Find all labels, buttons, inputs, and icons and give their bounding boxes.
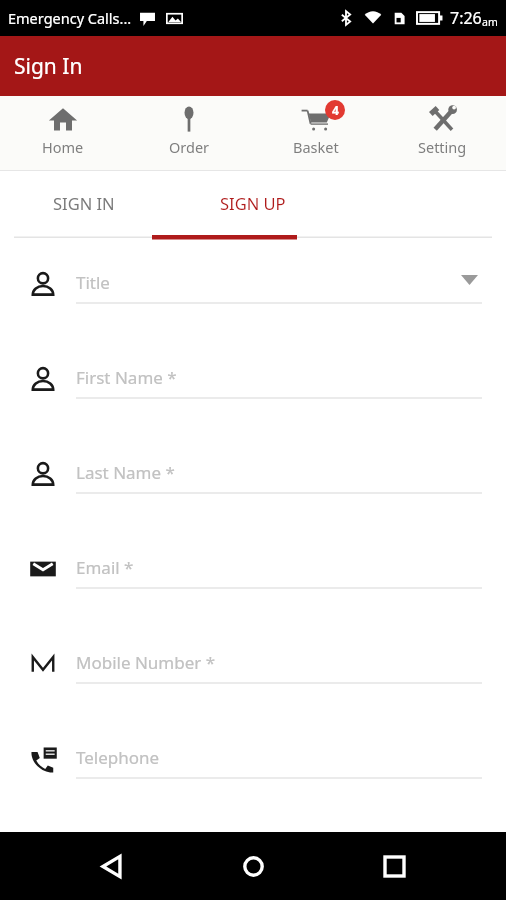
button[interactable]: Back	[85, 838, 141, 894]
button[interactable]: 4	[252, 96, 379, 170]
button[interactable]: Recent apps	[366, 838, 422, 894]
button[interactable]: Last Name *	[0, 452, 506, 547]
staticText: Email *	[76, 556, 134, 579]
staticText: Telephone	[76, 746, 160, 769]
button[interactable]: SIGN IN	[0, 171, 168, 235]
staticText: 4	[332, 102, 339, 118]
staticText: Sign In	[14, 52, 83, 81]
staticText: Home	[42, 137, 84, 157]
button[interactable]: Order	[126, 96, 252, 170]
staticText: Order	[169, 137, 210, 157]
staticText: 7:26	[450, 7, 482, 29]
button[interactable]: Telephone	[0, 737, 506, 832]
button[interactable]: Title	[0, 262, 506, 357]
staticText: Emergency Calls...	[8, 8, 132, 28]
staticText: SIGN IN	[53, 192, 115, 214]
button[interactable]: Email *	[0, 547, 506, 642]
staticText: Mobile Number *	[76, 651, 216, 674]
button[interactable]: Setting	[379, 96, 506, 170]
staticText: First Name *	[76, 366, 177, 389]
button[interactable]: First Name *	[0, 357, 506, 452]
button[interactable]: Mobile Number *	[0, 642, 506, 737]
staticText: Basket	[293, 137, 339, 157]
staticText: Title	[76, 271, 110, 294]
button[interactable]: Home	[225, 838, 281, 894]
staticText: Last Name *	[76, 461, 175, 484]
staticText: am	[482, 15, 498, 29]
staticText: Setting	[418, 137, 467, 157]
staticText: SIGN UP	[220, 192, 286, 214]
button[interactable]: SIGN UP	[168, 171, 337, 235]
button[interactable]: Home	[0, 96, 126, 170]
